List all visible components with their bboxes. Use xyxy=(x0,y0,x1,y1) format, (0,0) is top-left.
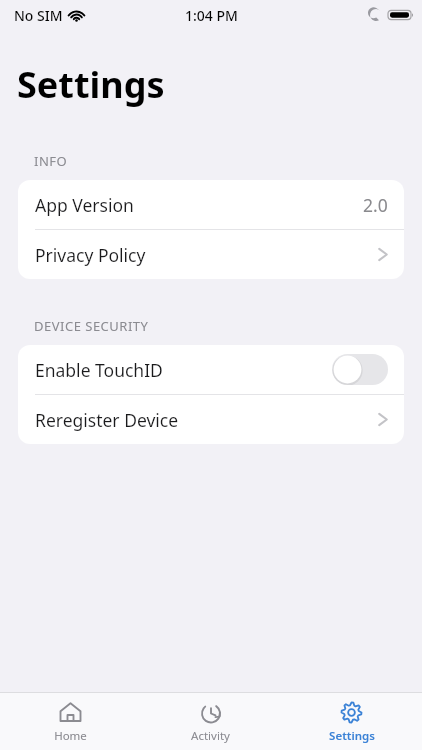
staticText: App Version xyxy=(35,193,134,217)
button[interactable]: Privacy Policy xyxy=(18,230,404,279)
button[interactable]: Settings xyxy=(281,693,422,750)
staticText: Reregister Device xyxy=(35,408,179,432)
button[interactable]: Activity xyxy=(140,693,281,750)
staticText: Privacy Policy xyxy=(35,243,146,267)
staticText: DEVICE SECURITY xyxy=(34,317,149,335)
button[interactable]: App Version xyxy=(18,180,404,229)
staticText: 1:04 PM xyxy=(185,6,238,25)
button[interactable]: Home xyxy=(0,693,140,750)
button[interactable]: Enable TouchID toggle xyxy=(332,354,388,385)
staticText: Settings xyxy=(17,60,165,109)
staticText: 2.0 xyxy=(363,193,388,217)
staticText: No SIM xyxy=(14,6,63,25)
staticText: Activity xyxy=(191,728,230,744)
staticText: Enable TouchID xyxy=(35,358,163,382)
staticText: Settings xyxy=(329,728,375,744)
staticText: Home xyxy=(54,728,87,744)
button[interactable]: Reregister Device xyxy=(18,395,404,444)
button[interactable]: Enable TouchID xyxy=(18,345,404,394)
staticText: INFO xyxy=(34,152,68,170)
